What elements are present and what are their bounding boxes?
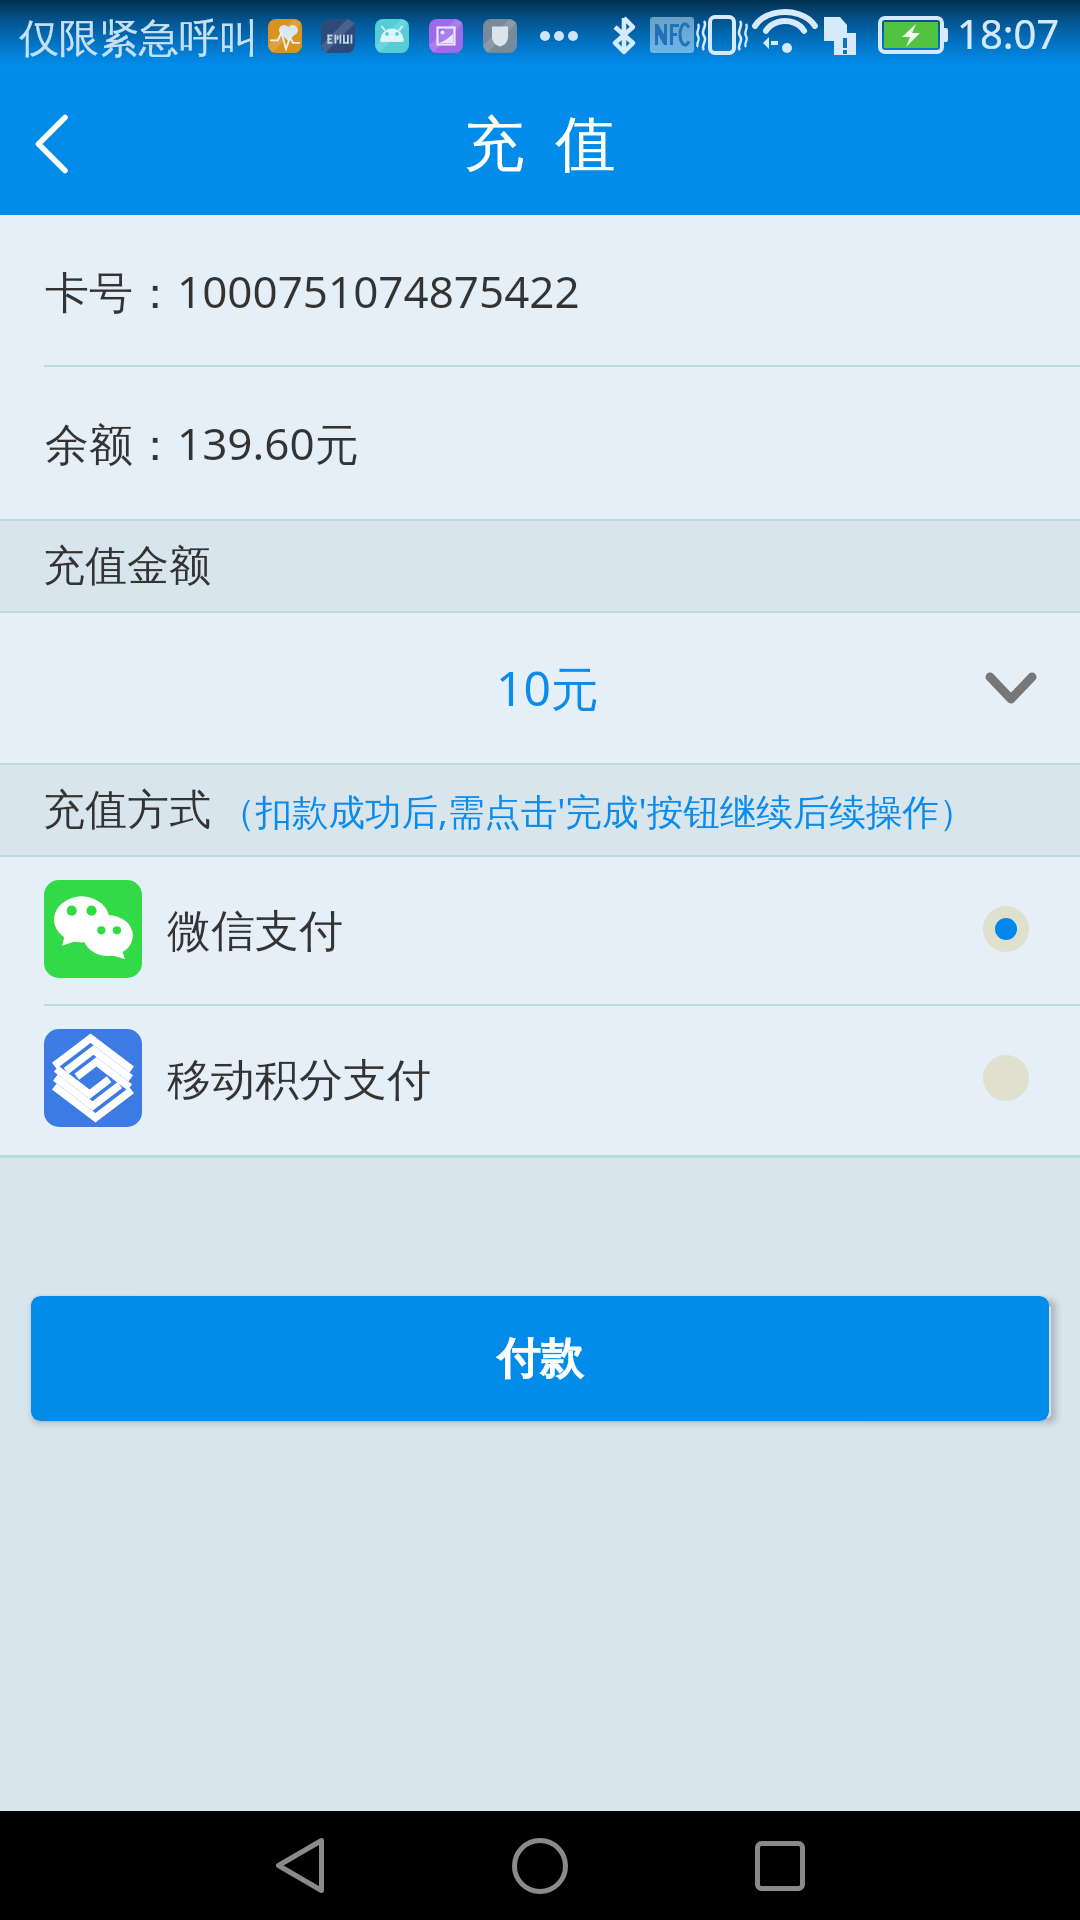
button[interactable]: 微信支付 [0,857,1080,1006]
staticText: 余额：139.60元 [45,413,359,473]
staticText: 仅限紧急呼叫 [19,13,259,63]
button[interactable]: Recent apps [690,1811,870,1920]
button[interactable]: Back [0,68,104,215]
staticText: 18:07 [957,6,1060,60]
staticText: 移动积分支付 [167,1053,431,1108]
button[interactable]: Back [210,1811,390,1920]
staticText: （扣款成功后,需点击'完成'按钮继续后续操作） [219,786,976,836]
staticText: 卡号：1000751074875422 [45,261,580,321]
staticText: 10元 [496,655,599,721]
staticText: 微信支付 [167,904,343,959]
staticText: 充值方式 [43,784,211,837]
button[interactable]: 付款 [31,1296,1049,1421]
button[interactable]: 移动积分支付 [0,1006,1080,1155]
staticText: 付款 [497,1332,583,1386]
button[interactable]: 10元 [0,613,1080,763]
button[interactable]: Home [450,1811,630,1920]
staticText: 充值金额 [43,540,211,593]
staticText: 充 值 [464,101,616,183]
